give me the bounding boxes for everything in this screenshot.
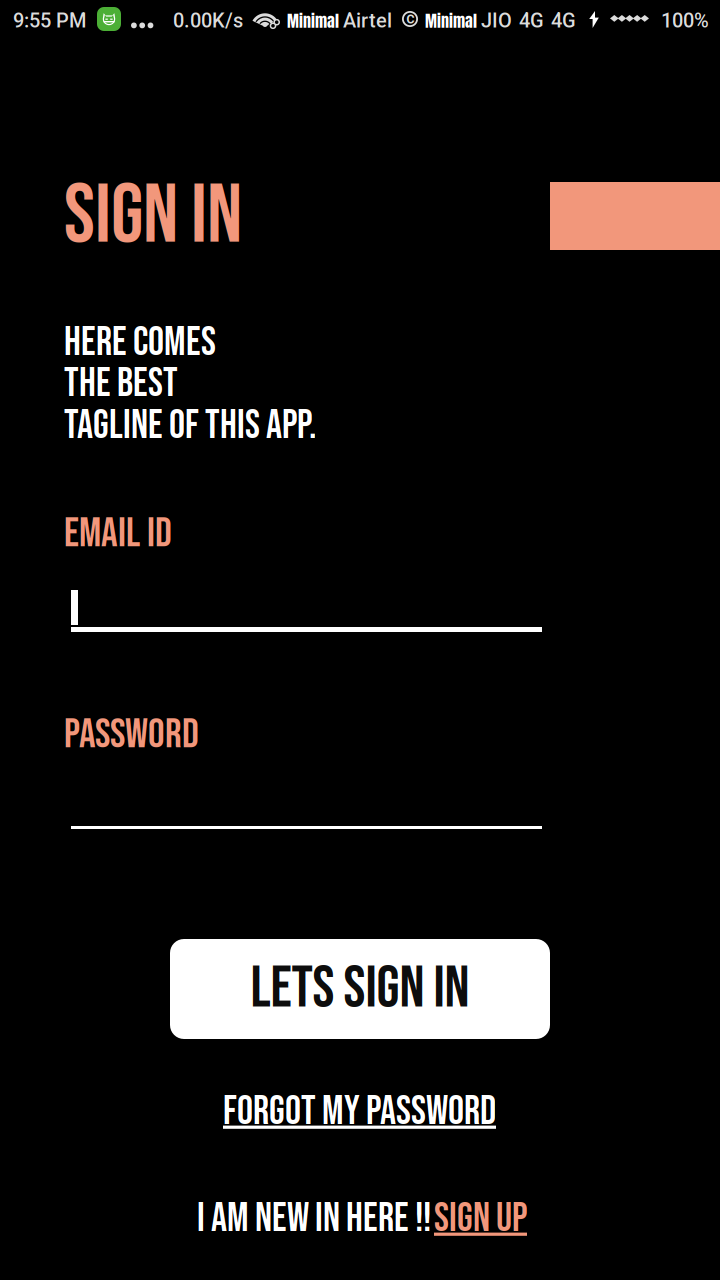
staticText: LETS SIGN IN — [250, 954, 469, 1024]
staticText: c — [406, 9, 414, 27]
staticText: 4G — [519, 9, 544, 32]
button[interactable]: I AM NEW IN HERE !! — [197, 1195, 529, 1243]
staticText: HERE COMES — [64, 319, 216, 367]
staticText: TAGLINE OF THIS APP. — [64, 402, 317, 450]
staticText: FORGOT MY PASSWORD — [223, 1088, 496, 1136]
staticText: JIO — [481, 9, 512, 32]
staticText: 9:55 PM — [13, 9, 86, 32]
staticText: SIGN IN — [64, 167, 242, 266]
staticText: Minimal — [287, 9, 339, 33]
staticText: SIGN UP — [434, 1195, 527, 1243]
staticText: 4G — [551, 9, 576, 32]
button[interactable]: FORGOT MY PASSWORD — [223, 1088, 523, 1136]
staticText: THE BEST — [64, 360, 178, 408]
staticText: Minimal — [425, 9, 477, 33]
staticText: Airtel — [343, 9, 392, 32]
staticText: EMAIL ID — [64, 509, 172, 559]
staticText: PASSWORD — [64, 710, 199, 760]
staticText: 0.00K/s — [173, 9, 243, 32]
button[interactable]: LETS SIGN IN — [170, 939, 550, 1039]
staticText: 100% — [661, 9, 709, 32]
staticText: I AM NEW IN HERE !! — [197, 1195, 431, 1243]
